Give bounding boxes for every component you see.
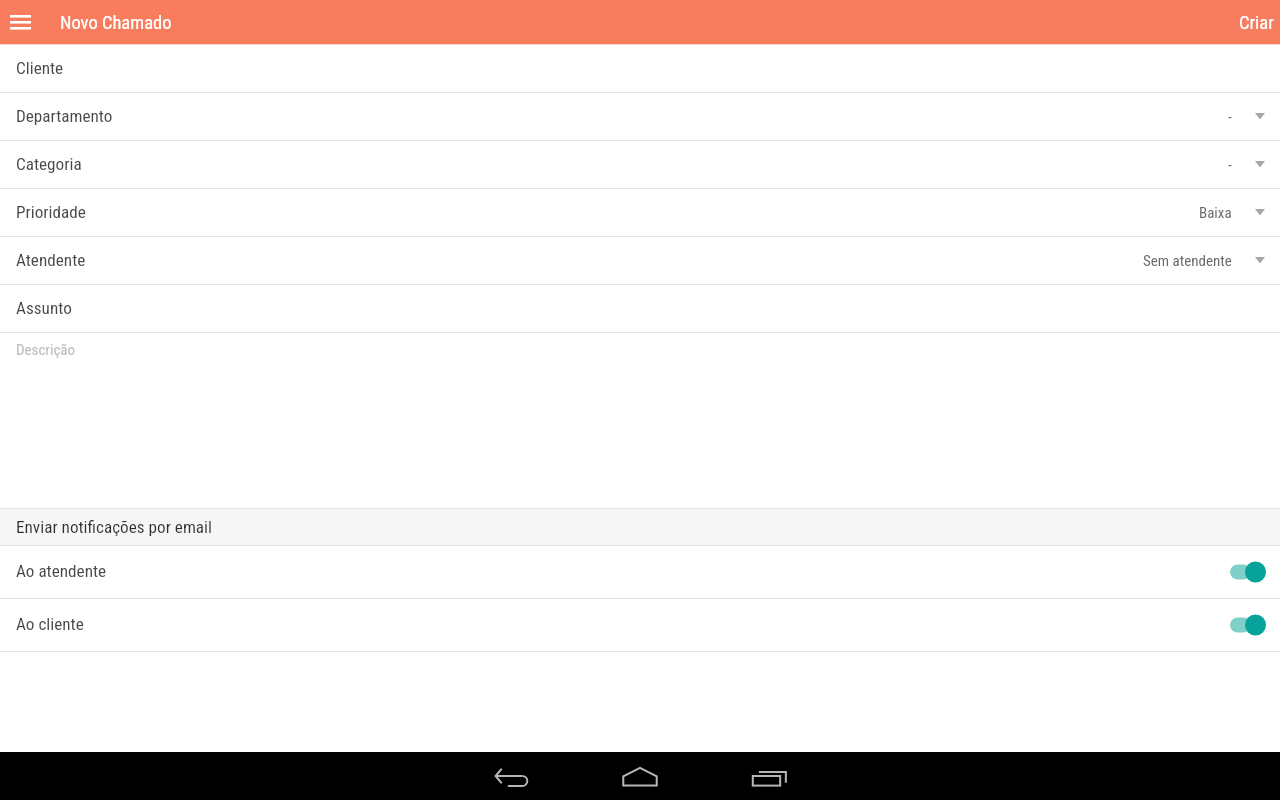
button[interactable]: Ao cliente [0, 599, 1280, 651]
staticText: Prioridade [16, 202, 86, 222]
button[interactable]: Departamento [0, 93, 1280, 140]
button[interactable]: Recent apps [704, 752, 832, 800]
staticText: Ao atendente [16, 561, 107, 581]
staticText: Criar [1239, 12, 1274, 34]
staticText: Cliente [16, 58, 64, 78]
staticText: Ao cliente [16, 614, 84, 634]
staticText: Assunto [16, 298, 72, 318]
staticText: Baixa [1199, 204, 1232, 222]
button[interactable]: Prioridade [0, 189, 1280, 236]
staticText: Descrição [16, 341, 76, 359]
staticText: - [1228, 108, 1232, 126]
button[interactable]: Home [576, 752, 704, 800]
button[interactable]: Categoria [0, 141, 1280, 188]
staticText: Categoria [16, 154, 82, 174]
staticText: Atendente [16, 250, 86, 270]
button[interactable]: Assunto [0, 285, 1280, 332]
button[interactable]: Criar [1232, 0, 1280, 44]
button[interactable]: Back [448, 752, 576, 800]
button[interactable]: Ao atendente [0, 546, 1280, 598]
staticText: Novo Chamado [60, 12, 172, 34]
button[interactable]: Open navigation menu [0, 0, 40, 44]
button[interactable]: Cliente [0, 45, 1280, 92]
staticText: - [1228, 156, 1232, 174]
staticText: Sem atendente [1143, 252, 1232, 270]
staticText: Departamento [16, 106, 113, 126]
staticText: Enviar notificações por email [16, 517, 212, 537]
button[interactable]: Atendente [0, 237, 1280, 284]
